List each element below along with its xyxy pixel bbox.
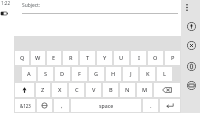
button[interactable]: O: [148, 51, 163, 65]
staticText: C: [75, 86, 79, 94]
button[interactable]: Q: [15, 51, 29, 65]
button[interactable]: W: [31, 51, 45, 65]
button[interactable]: D: [55, 67, 70, 81]
button[interactable]: &123: [15, 99, 35, 112]
staticText: E: [52, 54, 56, 62]
button[interactable]: space: [71, 99, 141, 112]
staticText: D: [60, 70, 65, 78]
button[interactable]: X: [52, 83, 67, 97]
button[interactable]: P: [165, 51, 180, 65]
button[interactable]: Emoji: [37, 99, 52, 112]
button[interactable]: Shift: [15, 83, 34, 97]
button[interactable]: Attachment: [187, 62, 196, 71]
staticText: .: [150, 102, 152, 110]
staticText: X: [58, 86, 62, 94]
staticText: I: [138, 54, 140, 62]
staticText: L: [163, 70, 166, 78]
staticText: Subject:: [22, 2, 41, 9]
button[interactable]: I: [131, 51, 146, 65]
button[interactable]: Z: [36, 83, 50, 97]
button[interactable]: Enter: [160, 99, 180, 112]
staticText: R: [69, 54, 73, 62]
staticText: ,: [61, 102, 63, 110]
button[interactable]: .: [143, 99, 158, 112]
button[interactable]: N: [120, 83, 135, 97]
staticText: Z: [41, 86, 45, 94]
staticText: P: [171, 54, 175, 62]
button[interactable]: E: [47, 51, 61, 65]
button[interactable]: L: [157, 67, 172, 81]
staticText: T: [86, 54, 90, 62]
staticText: Q: [20, 54, 25, 62]
staticText: J: [130, 70, 132, 78]
staticText: space: [99, 102, 114, 109]
staticText: Y: [103, 54, 107, 62]
staticText: K: [146, 70, 150, 78]
button[interactable]: F: [72, 67, 87, 81]
staticText: O: [153, 54, 158, 62]
staticText: G: [94, 70, 99, 78]
staticText: &123: [20, 103, 31, 109]
button[interactable]: R: [63, 51, 78, 65]
staticText: V: [92, 86, 96, 94]
button[interactable]: G: [89, 67, 104, 81]
button[interactable]: J: [123, 67, 138, 81]
button[interactable]: Backspace: [154, 83, 180, 97]
staticText: H: [111, 70, 116, 78]
button[interactable]: V: [86, 83, 101, 97]
staticText: W: [35, 54, 41, 62]
staticText: N: [125, 86, 130, 94]
button[interactable]: K: [140, 67, 155, 81]
button[interactable]: B: [103, 83, 118, 97]
button[interactable]: C: [69, 83, 84, 97]
button[interactable]: Y: [97, 51, 112, 65]
button[interactable]: Keyboard settings: [187, 81, 196, 90]
staticText: 1:22: [1, 0, 11, 6]
button[interactable]: H: [106, 67, 121, 81]
button[interactable]: U: [114, 51, 129, 65]
button[interactable]: S: [38, 67, 53, 81]
button[interactable]: Voice input: [187, 22, 196, 31]
button[interactable]: T: [80, 51, 95, 65]
staticText: S: [44, 70, 48, 78]
staticText: U: [119, 54, 124, 62]
staticText: F: [78, 70, 81, 78]
button[interactable]: M: [137, 83, 152, 97]
staticText: M: [142, 86, 148, 94]
button[interactable]: More options: [181, 1, 192, 14]
staticText: A: [27, 70, 31, 78]
button[interactable]: Close: [187, 41, 196, 50]
button[interactable]: A: [22, 67, 36, 81]
staticText: B: [109, 86, 113, 94]
button[interactable]: ,: [54, 99, 69, 112]
